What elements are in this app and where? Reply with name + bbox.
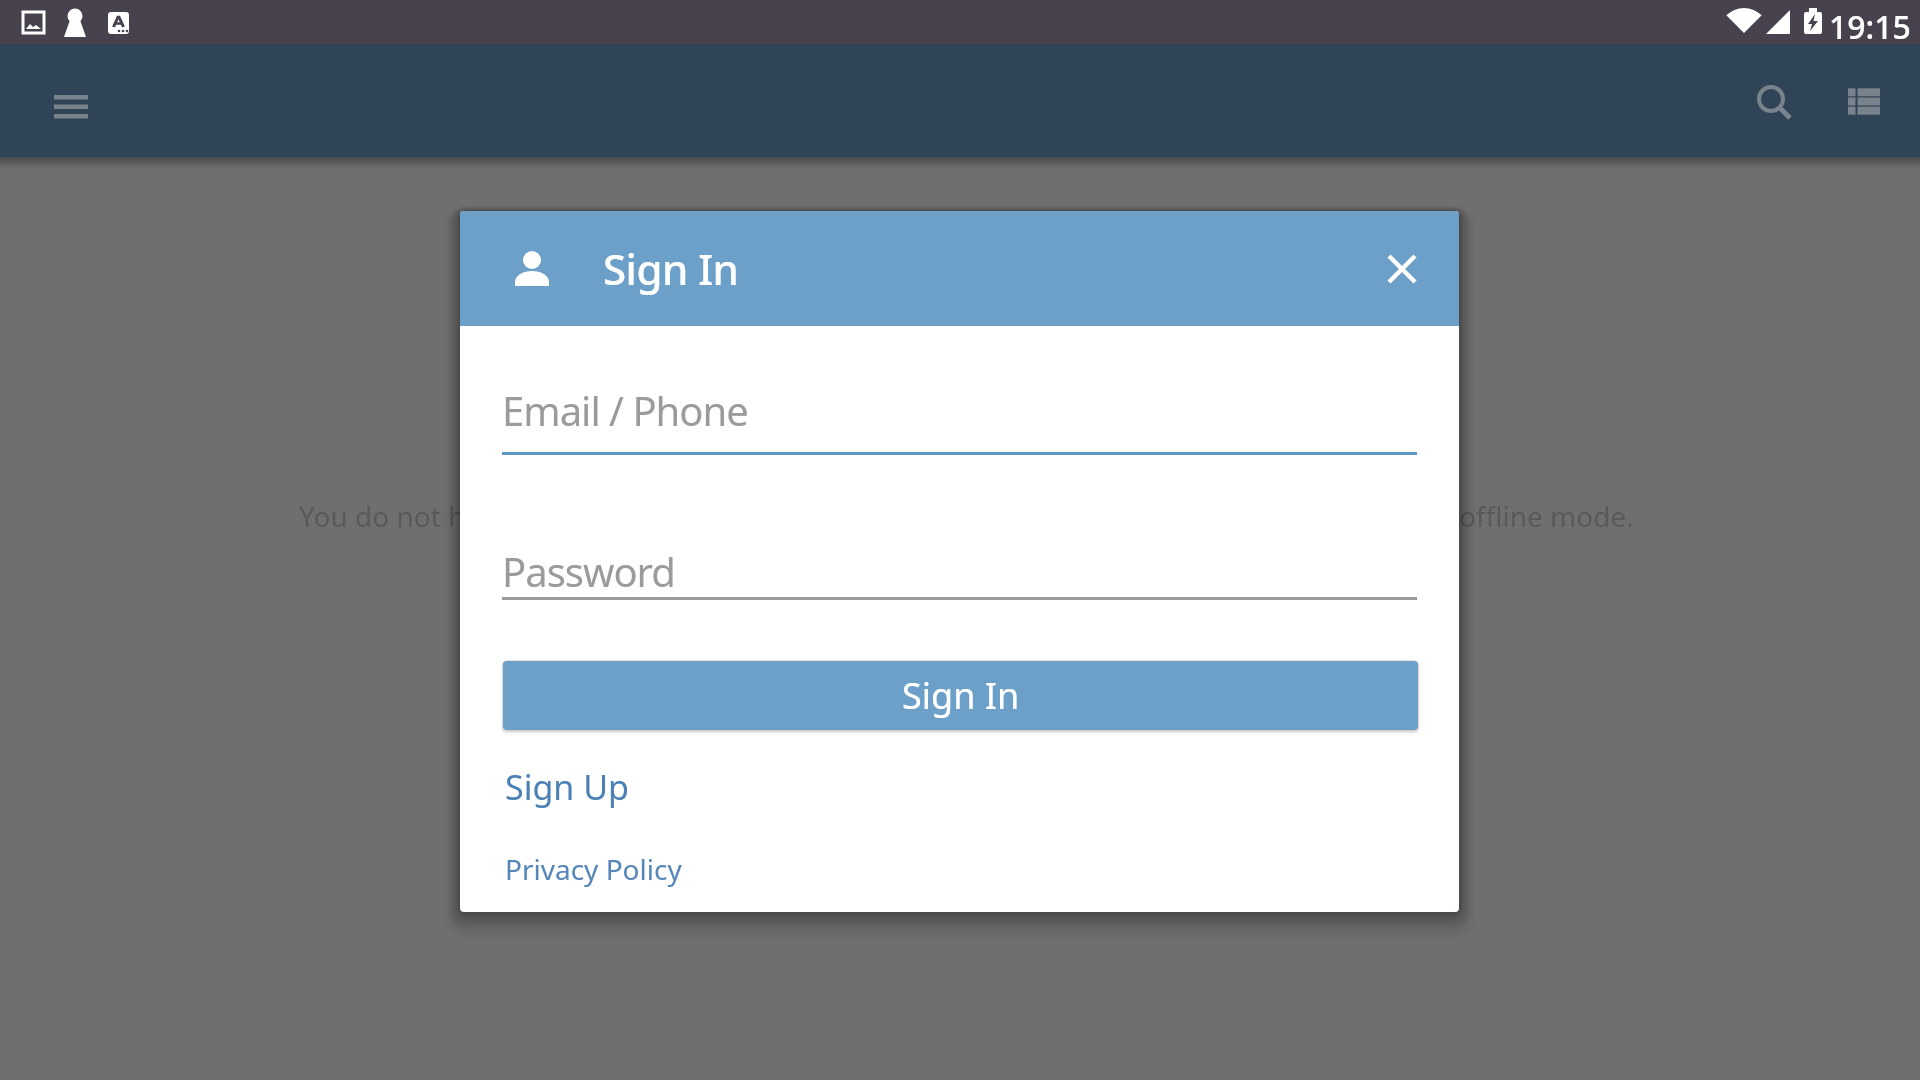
staticText: Password (502, 544, 675, 598)
staticText: Privacy Policy (505, 850, 682, 888)
button[interactable]: Sign In (503, 661, 1418, 730)
button[interactable] (38, 84, 104, 134)
button[interactable]: Privacy Policy (490, 842, 697, 896)
staticText: You do not have any maps (299, 497, 646, 535)
staticText: Sign Up (505, 764, 629, 810)
button[interactable] (1848, 44, 1920, 157)
button[interactable] (1776, 44, 1848, 157)
staticText: offline mode. (1459, 497, 1634, 535)
staticText: Email / Phone (502, 383, 748, 437)
staticText: Sign In (603, 240, 739, 297)
staticText: Sign In (902, 671, 1020, 720)
button[interactable]: Sign Up (490, 756, 644, 818)
button[interactable] (1369, 211, 1459, 326)
staticText: 19:15 (1829, 5, 1911, 49)
